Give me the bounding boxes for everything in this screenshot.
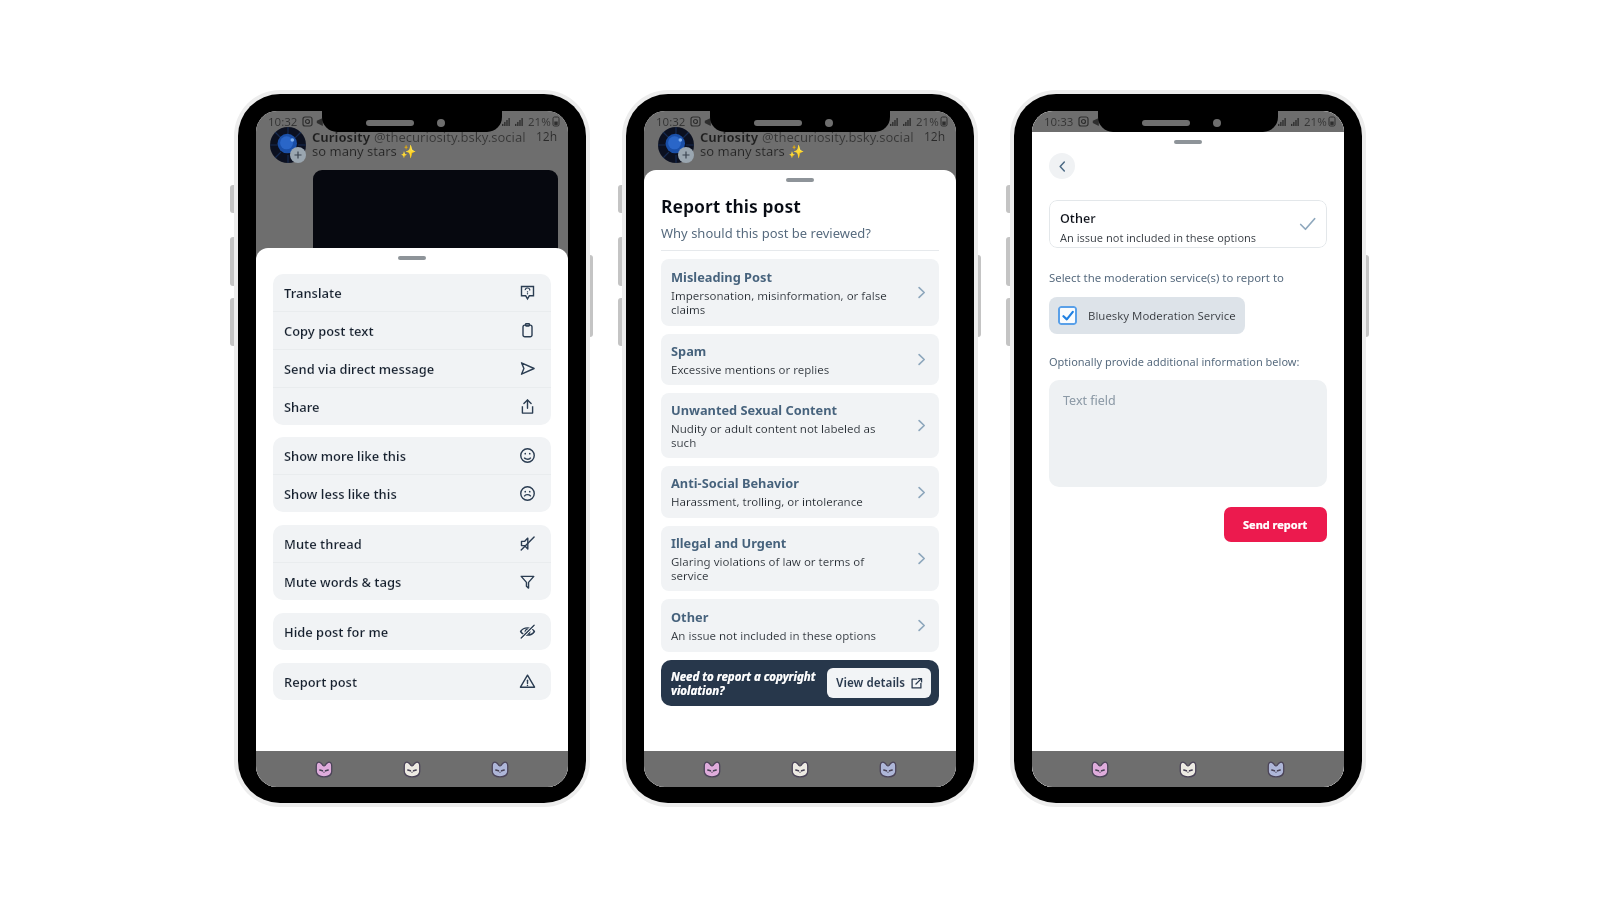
staticText: Impersonation, misinformation, or false … <box>671 288 890 317</box>
button[interactable]: Profile <box>844 751 932 787</box>
button[interactable]: Bluesky Moderation Service <box>1049 297 1245 334</box>
staticText: Misleading Post <box>671 268 773 285</box>
button[interactable]: Profile <box>456 751 544 787</box>
staticText: Share <box>284 398 320 415</box>
other: Translate <box>520 285 535 300</box>
staticText: 10:32 <box>268 114 298 130</box>
staticText: Other <box>671 608 709 625</box>
staticText: 21% <box>1304 114 1327 130</box>
button[interactable]: Mute words & tags <box>273 563 551 600</box>
button[interactable]: Unwanted Sexual Content <box>661 393 939 458</box>
other: Send <box>520 361 535 376</box>
staticText: @thecuriosity.bsky.social <box>762 128 914 146</box>
staticText: @thecuriosity.bsky.social <box>374 128 526 146</box>
staticText: View details <box>836 675 906 691</box>
staticText: Harassment, trolling, or intolerance <box>671 494 863 510</box>
staticText: Illegal and Urgent <box>671 534 787 551</box>
button[interactable]: Home <box>668 751 756 787</box>
other: Filter <box>520 574 535 589</box>
button[interactable]: Anti-Social Behavior <box>661 466 939 518</box>
button[interactable]: Translate <box>273 274 551 311</box>
staticText: Show more like this <box>284 447 406 464</box>
staticText: Need to report a copyright violation? <box>671 669 821 698</box>
staticText: 12h <box>924 128 946 144</box>
button[interactable]: Home <box>1056 751 1144 787</box>
staticText: Spam <box>671 342 707 359</box>
other: Show less <box>520 486 535 501</box>
other: Warning <box>520 674 535 689</box>
staticText: Send via direct message <box>284 360 435 377</box>
staticText: Text field <box>1063 392 1116 409</box>
staticText: 21% <box>916 114 939 130</box>
button[interactable]: Misleading Post <box>661 259 939 326</box>
button[interactable]: Other <box>1049 200 1327 248</box>
staticText: Show less like this <box>284 485 397 502</box>
staticText: Select the moderation service(s) to repo… <box>1049 270 1284 286</box>
button[interactable]: Copy post text <box>273 312 551 349</box>
staticText: An issue not included in these options <box>671 628 877 644</box>
staticText: so many stars ✨ <box>700 142 805 160</box>
staticText: Why should this post be reviewed? <box>661 224 871 242</box>
button[interactable]: Search <box>756 751 844 787</box>
other: Mute <box>520 536 535 551</box>
button[interactable]: Illegal and Urgent <box>661 526 939 591</box>
button[interactable]: View details <box>827 668 931 698</box>
staticText: Glaring violations of law or terms of se… <box>671 554 890 583</box>
staticText: Bluesky Moderation Service <box>1088 308 1236 324</box>
staticText: Translate <box>284 284 342 301</box>
other: Copy <box>520 323 535 338</box>
staticText: 10:33 <box>1044 114 1074 130</box>
other: Hide <box>520 624 535 639</box>
staticText: Other <box>1060 210 1096 227</box>
staticText: Anti-Social Behavior <box>671 474 799 491</box>
button[interactable]: Home <box>280 751 368 787</box>
button[interactable]: Show less like this <box>273 475 551 512</box>
button[interactable]: Back <box>1049 153 1075 179</box>
staticText: 21% <box>528 114 551 130</box>
button[interactable]: Share <box>273 388 551 425</box>
staticText: Curiosity <box>700 128 759 146</box>
button[interactable]: Spam <box>661 334 939 385</box>
staticText: Send report <box>1243 517 1308 532</box>
staticText: 10:32 <box>656 114 686 130</box>
button[interactable]: Show more like this <box>273 437 551 474</box>
staticText: Nudity or adult content not labeled as s… <box>671 421 890 450</box>
staticText: 12h <box>536 128 558 144</box>
staticText: Report this post <box>661 194 801 218</box>
staticText: Copy post text <box>284 322 374 339</box>
staticText: Optionally provide additional informatio… <box>1049 354 1300 369</box>
staticText: Mute thread <box>284 535 362 552</box>
other: Show more <box>520 448 535 463</box>
other: Share <box>520 399 535 414</box>
button[interactable]: Text field <box>1049 380 1327 487</box>
button[interactable]: Mute thread <box>273 525 551 562</box>
staticText: Report post <box>284 673 358 690</box>
staticText: An issue not included in these options <box>1060 230 1257 245</box>
button[interactable]: Send report <box>1224 507 1327 542</box>
button[interactable]: Other <box>661 599 939 652</box>
staticText: Hide post for me <box>284 623 389 640</box>
button[interactable]: Search <box>368 751 456 787</box>
button[interactable]: Search <box>1144 751 1232 787</box>
staticText: Excessive mentions or replies <box>671 362 830 378</box>
staticText: Unwanted Sexual Content <box>671 401 838 418</box>
staticText: Curiosity <box>312 128 371 146</box>
button[interactable]: Hide post for me <box>273 613 551 650</box>
button[interactable]: Report post <box>273 663 551 700</box>
button[interactable]: Profile <box>1232 751 1320 787</box>
staticText: so many stars ✨ <box>312 142 417 160</box>
staticText: Mute words & tags <box>284 573 402 590</box>
button[interactable]: Send via direct message <box>273 350 551 387</box>
